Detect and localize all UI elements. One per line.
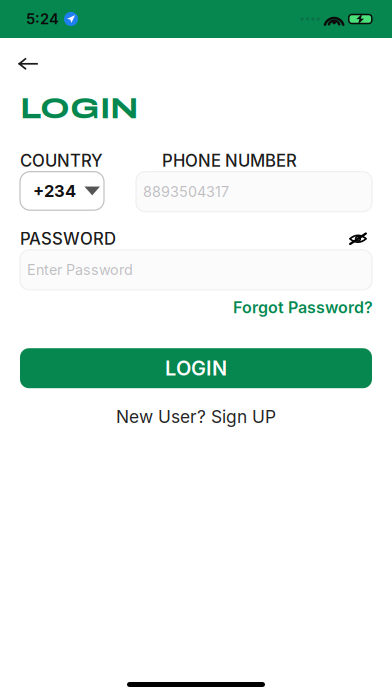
staticText: 5:24	[26, 10, 59, 28]
staticText: LOGIN	[20, 93, 139, 124]
staticText: LOGIN	[165, 356, 227, 380]
button[interactable]: Back	[0, 38, 53, 80]
staticText: Forgot Password?	[233, 298, 373, 317]
button[interactable]: Show password	[349, 232, 367, 245]
staticText: PASSWORD	[20, 229, 116, 249]
staticText: Enter Password	[27, 261, 133, 278]
staticText: 8893504317	[143, 183, 229, 200]
button[interactable]: Forgot Password?	[233, 290, 392, 320]
staticText: +234	[33, 181, 76, 201]
button[interactable]: +234	[20, 172, 104, 210]
staticText: COUNTRY	[20, 150, 103, 171]
staticText: New User? Sign UP	[116, 406, 276, 427]
button[interactable]: New User? Sign UP	[0, 388, 392, 433]
staticText: PHONE NUMBER	[162, 150, 297, 171]
button[interactable]: LOGIN	[0, 348, 392, 388]
